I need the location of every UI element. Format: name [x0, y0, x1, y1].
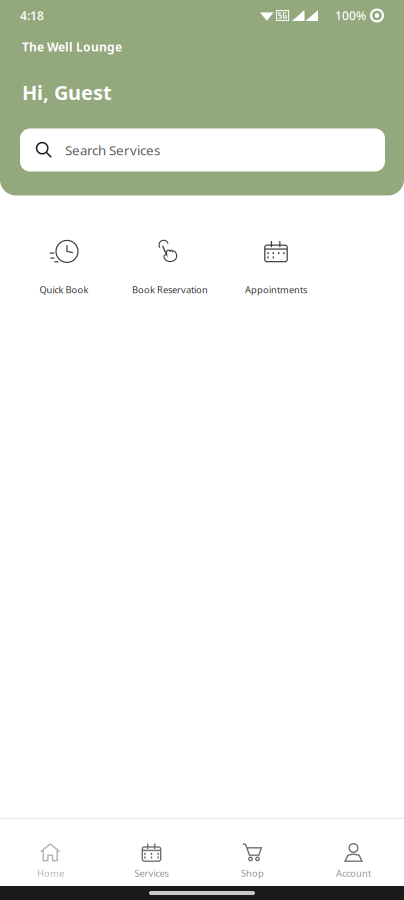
staticText: 100%: [335, 7, 366, 23]
button[interactable]: Appointments: [223, 239, 329, 298]
staticText: Search Services: [65, 141, 160, 159]
button[interactable]: Quick Book: [11, 239, 117, 298]
staticText: The Well Lounge: [22, 39, 122, 55]
button[interactable]: Home: [0, 818, 101, 886]
button[interactable]: Search Services: [20, 128, 385, 171]
staticText: Quick Book: [39, 283, 88, 296]
staticText: Hi, Guest: [22, 79, 112, 105]
staticText: Appointments: [245, 283, 307, 296]
button[interactable]: Shop: [202, 818, 303, 886]
staticText: Account: [336, 867, 371, 879]
button[interactable]: Book Reservation: [117, 239, 223, 298]
staticText: 4:18: [20, 7, 44, 23]
staticText: Shop: [241, 867, 264, 879]
staticText: Home: [37, 867, 64, 879]
button[interactable]: Account: [303, 818, 404, 886]
staticText: Services: [134, 867, 168, 879]
button[interactable]: Services: [101, 818, 202, 886]
staticText: Book Reservation: [132, 283, 208, 296]
